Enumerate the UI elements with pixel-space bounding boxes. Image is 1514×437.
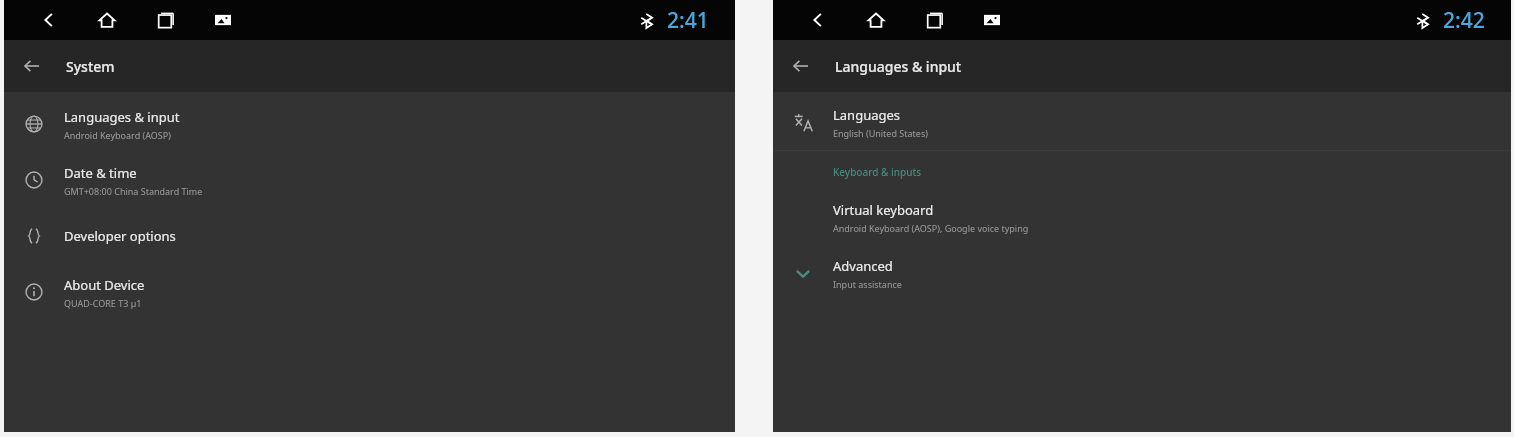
button[interactable]: Navigate up (14, 48, 50, 84)
staticText: GMT+08:00 China Standard Time (64, 185, 203, 197)
button[interactable]: Developer options (4, 208, 735, 264)
button[interactable]: Recent apps (917, 3, 951, 37)
button[interactable]: Date & time (4, 152, 735, 208)
button[interactable]: Screenshot (975, 3, 1009, 37)
staticText: QUAD-CORE T3 µ1 (64, 297, 142, 309)
button[interactable]: About Device (4, 264, 735, 320)
staticText: Advanced (833, 257, 893, 275)
button[interactable]: Virtual keyboard (773, 189, 1511, 245)
button[interactable]: Languages (773, 94, 1511, 150)
staticText: Virtual keyboard (833, 201, 934, 219)
staticText: English (United States) (833, 127, 928, 139)
staticText: Languages & input (64, 108, 180, 126)
button[interactable]: Languages & input (4, 96, 735, 152)
button[interactable]: Back (32, 3, 66, 37)
staticText: Keyboard & inputs (833, 165, 922, 179)
staticText: 2:42 (1443, 6, 1485, 35)
staticText: About Device (64, 276, 145, 294)
staticText: Languages (833, 106, 901, 124)
button[interactable]: Navigate up (783, 48, 819, 84)
staticText: Developer options (64, 227, 176, 245)
button[interactable]: Screenshot (206, 3, 240, 37)
staticText: Date & time (64, 164, 137, 182)
staticText: System (66, 57, 115, 76)
staticText: Languages & input (835, 57, 962, 76)
staticText: 2:41 (667, 6, 709, 35)
staticText: Input assistance (833, 278, 902, 290)
button[interactable]: Home (90, 3, 124, 37)
staticText: Android Keyboard (AOSP) (64, 129, 171, 141)
button[interactable]: Home (859, 3, 893, 37)
button[interactable]: Recent apps (148, 3, 182, 37)
button[interactable]: Back (801, 3, 835, 37)
staticText: Android Keyboard (AOSP), Google voice ty… (833, 222, 1029, 234)
button[interactable]: Advanced (773, 245, 1511, 301)
